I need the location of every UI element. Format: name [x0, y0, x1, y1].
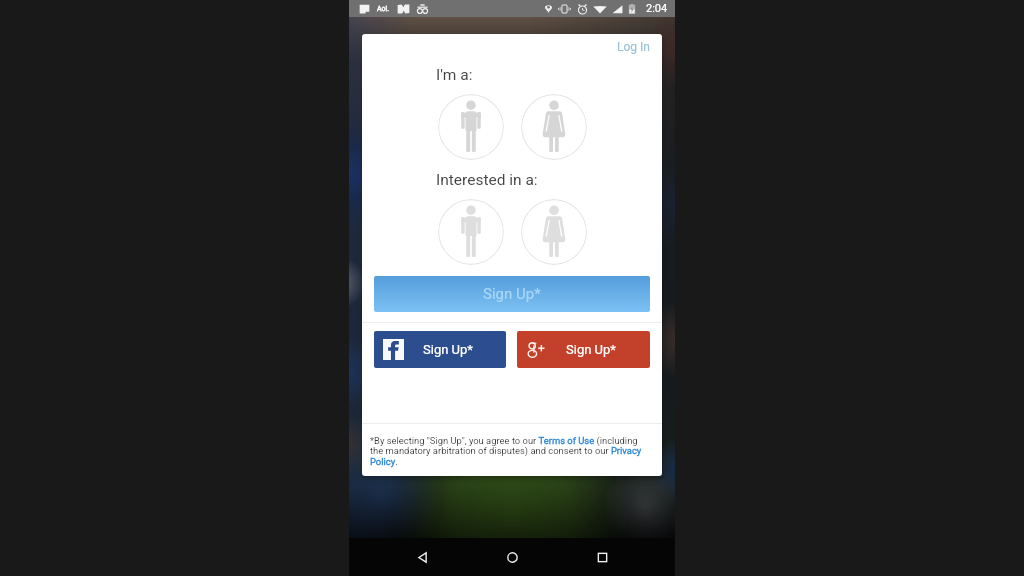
- button[interactable]: Sign Up*: [374, 331, 506, 368]
- button[interactable]: Home: [495, 540, 529, 574]
- staticText: Sign Up*: [566, 342, 616, 357]
- button[interactable]: Back: [405, 540, 439, 574]
- button[interactable]: Male: [438, 94, 504, 160]
- button[interactable]: Sign Up*: [374, 276, 650, 312]
- staticText: 2:04: [646, 2, 668, 15]
- staticText: Sign Up*: [483, 285, 541, 303]
- staticText: *By selecting "Sign Up", you agree to ou…: [370, 435, 645, 468]
- staticText: Interested in a:: [436, 171, 538, 189]
- button[interactable]: Recents: [585, 540, 619, 574]
- staticText: Sign Up*: [423, 342, 473, 357]
- button[interactable]: Sign Up*: [517, 331, 650, 368]
- button[interactable]: Female: [521, 94, 587, 160]
- staticText: Log In: [617, 40, 650, 54]
- button[interactable]: Female: [521, 199, 587, 265]
- staticText: I'm a:: [436, 66, 473, 84]
- staticText: Aol.: [377, 5, 390, 13]
- button[interactable]: Log In: [605, 35, 662, 59]
- button[interactable]: Male: [438, 199, 504, 265]
